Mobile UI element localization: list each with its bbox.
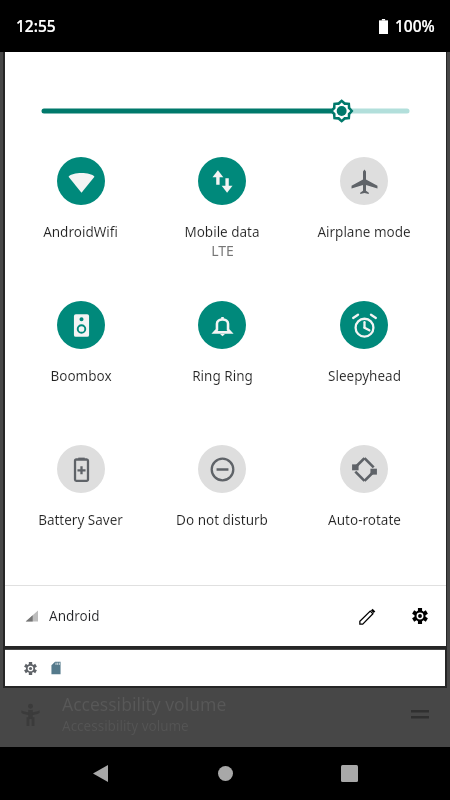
staticText: Sleepyhead <box>328 367 401 385</box>
button[interactable]: Back <box>76 747 124 800</box>
button[interactable]: Sleepyhead <box>293 282 435 426</box>
button[interactable]: Boombox <box>10 282 151 426</box>
button[interactable]: Mobile data <box>151 138 293 282</box>
staticText: Accessibility volume <box>62 717 189 735</box>
staticText: Ring Ring <box>192 367 253 385</box>
button[interactable]: AndroidWifi <box>10 138 151 282</box>
staticText: Boombox <box>50 367 112 385</box>
button[interactable]: Battery Saver <box>10 426 151 570</box>
staticText: Accessibility volume <box>62 692 227 716</box>
staticText: AndroidWifi <box>43 223 118 241</box>
button[interactable]: Ring Ring <box>151 282 293 426</box>
staticText: Battery Saver <box>38 511 123 529</box>
staticText: Airplane mode <box>317 223 411 241</box>
staticText: Do not disturb <box>176 511 268 529</box>
staticText: 100% <box>395 15 435 36</box>
staticText: Auto-rotate <box>328 511 401 529</box>
button[interactable]: Settings <box>399 595 441 637</box>
button[interactable]: Home <box>201 747 249 800</box>
button[interactable]: Recents <box>325 747 373 800</box>
staticText: Android <box>49 607 100 625</box>
staticText: 12:55 <box>16 15 56 36</box>
staticText: Mobile data <box>184 223 260 241</box>
button[interactable]: Auto-rotate <box>293 426 435 570</box>
button[interactable]: Airplane mode <box>293 138 435 282</box>
button[interactable]: Edit <box>346 595 388 637</box>
staticText: LTE <box>211 241 234 260</box>
button[interactable]: Do not disturb <box>151 426 293 570</box>
